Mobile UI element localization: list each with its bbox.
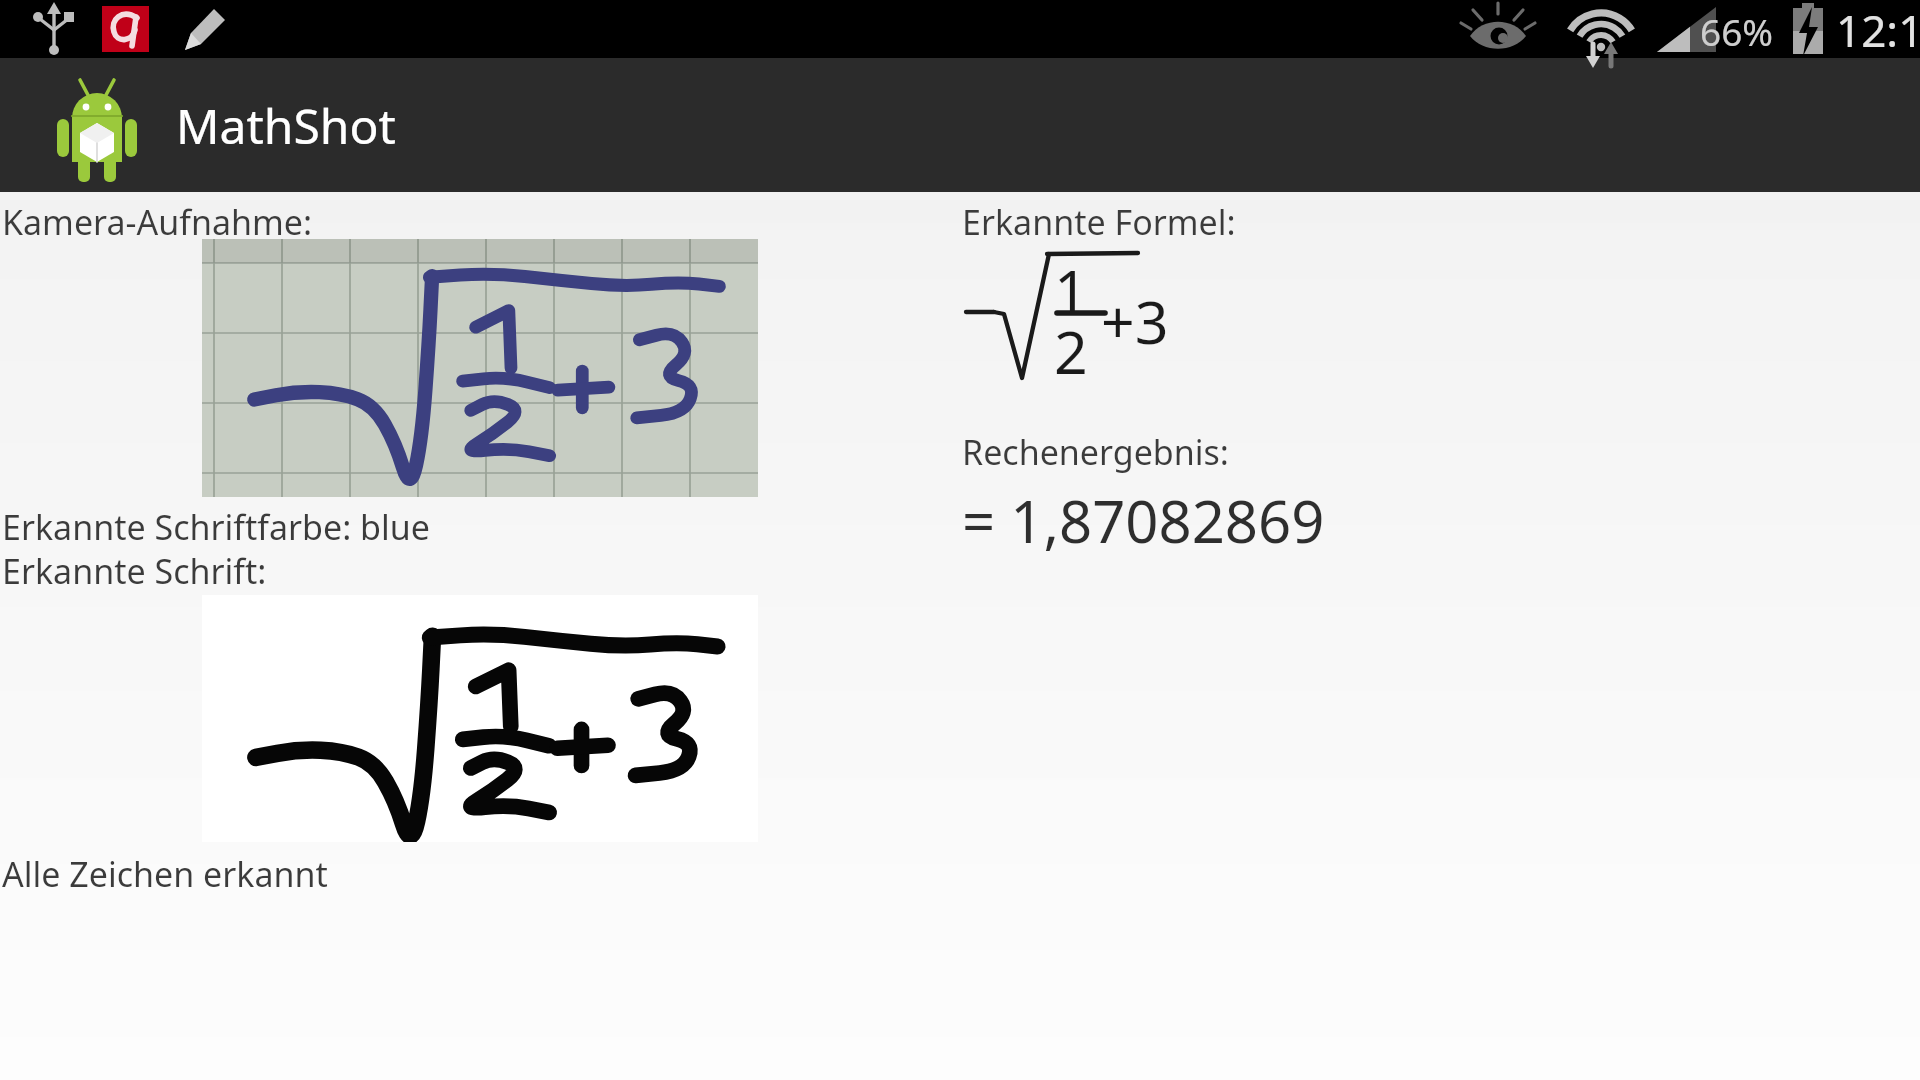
staticText: 1 (1054, 250, 1088, 330)
staticText: 12:12 (1836, 0, 1920, 60)
staticText: Rechenergebnis: (962, 429, 1229, 475)
staticText: Erkannte Schriftfarbe: blue (2, 504, 430, 550)
staticText: Erkannte Formel: (962, 199, 1236, 245)
staticText: 2 (1054, 311, 1088, 391)
button[interactable]: MathShot (0, 58, 1920, 192)
staticText: Kamera-Aufnahme: (2, 199, 313, 245)
staticText: 66% (1700, 6, 1774, 56)
staticText: +3 (1101, 281, 1169, 361)
staticText: = 1,87082869 (962, 481, 1325, 560)
staticText: Alle Zeichen erkannt (2, 851, 328, 897)
staticText: MathShot (176, 93, 396, 158)
staticText: Erkannte Schrift: (2, 548, 267, 594)
